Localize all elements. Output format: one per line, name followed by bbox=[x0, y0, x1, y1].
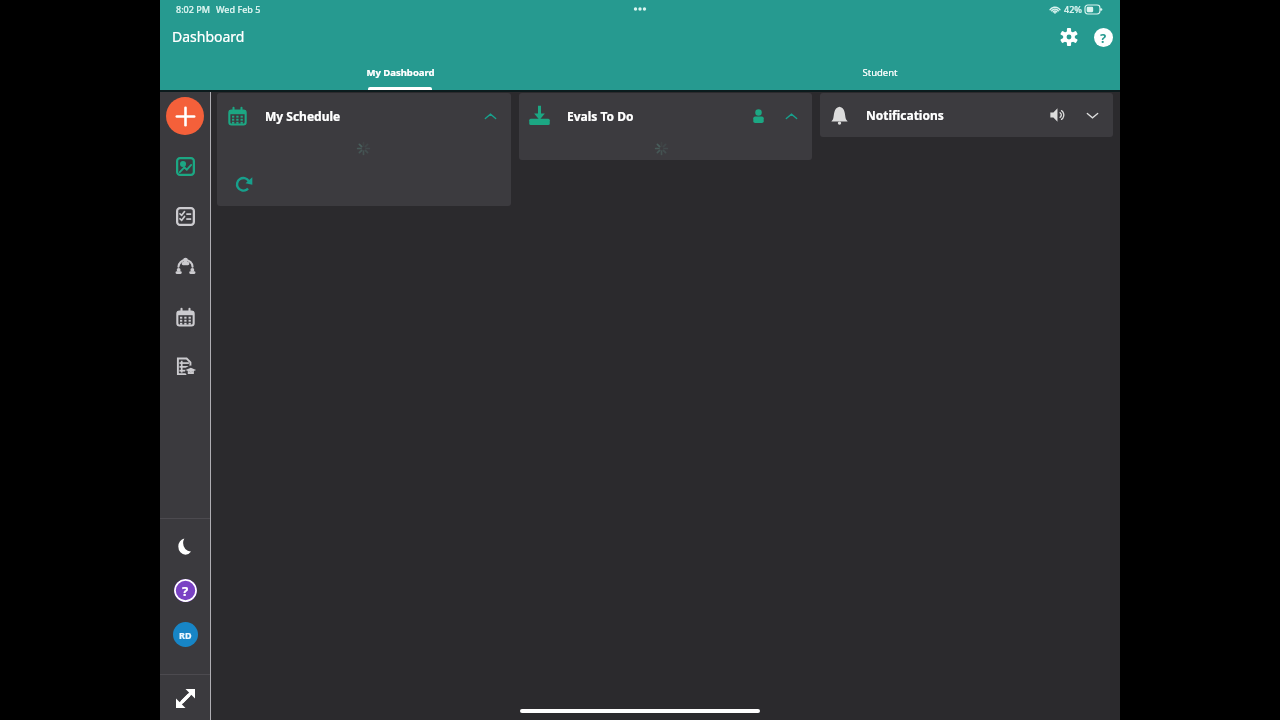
button[interactable]: Dark mode bbox=[167, 528, 203, 564]
button[interactable]: Refresh bbox=[232, 172, 256, 196]
staticText: Evals To Do bbox=[567, 108, 634, 124]
staticText: Dashboard bbox=[172, 27, 245, 46]
button[interactable]: Tasks bbox=[167, 198, 203, 234]
button[interactable]: Sound on bbox=[1045, 102, 1071, 128]
button[interactable]: Support bbox=[167, 572, 203, 608]
button[interactable]: Team bbox=[167, 248, 203, 284]
button[interactable]: Collapse bbox=[477, 103, 503, 129]
button[interactable]: Dashboard bbox=[167, 148, 203, 184]
button[interactable]: Student bbox=[640, 57, 1120, 91]
staticText: Notifications bbox=[866, 107, 944, 123]
button[interactable]: Assignee bbox=[745, 103, 771, 129]
staticText: Student bbox=[862, 66, 898, 79]
button[interactable]: Reports bbox=[167, 348, 203, 384]
staticText: RD bbox=[179, 629, 192, 641]
staticText: 8:02 PM bbox=[176, 3, 210, 15]
button[interactable]: Collapse bbox=[778, 103, 804, 129]
staticText: My Dashboard bbox=[366, 66, 435, 79]
button[interactable]: Add bbox=[166, 97, 204, 135]
button[interactable]: My Dashboard bbox=[160, 57, 640, 91]
button[interactable]: Expand bbox=[1079, 102, 1105, 128]
staticText: My Schedule bbox=[265, 108, 341, 124]
button[interactable]: Settings bbox=[1052, 20, 1086, 54]
button[interactable]: Profile bbox=[167, 616, 203, 652]
button[interactable]: Expand bbox=[167, 680, 203, 716]
button[interactable]: Calendar bbox=[167, 299, 203, 335]
button[interactable]: Help bbox=[1086, 20, 1120, 54]
staticText: Wed Feb 5 bbox=[216, 3, 261, 15]
staticText: 42% bbox=[1064, 3, 1082, 15]
staticText: ? bbox=[1100, 29, 1107, 47]
staticText: ? bbox=[182, 582, 189, 600]
